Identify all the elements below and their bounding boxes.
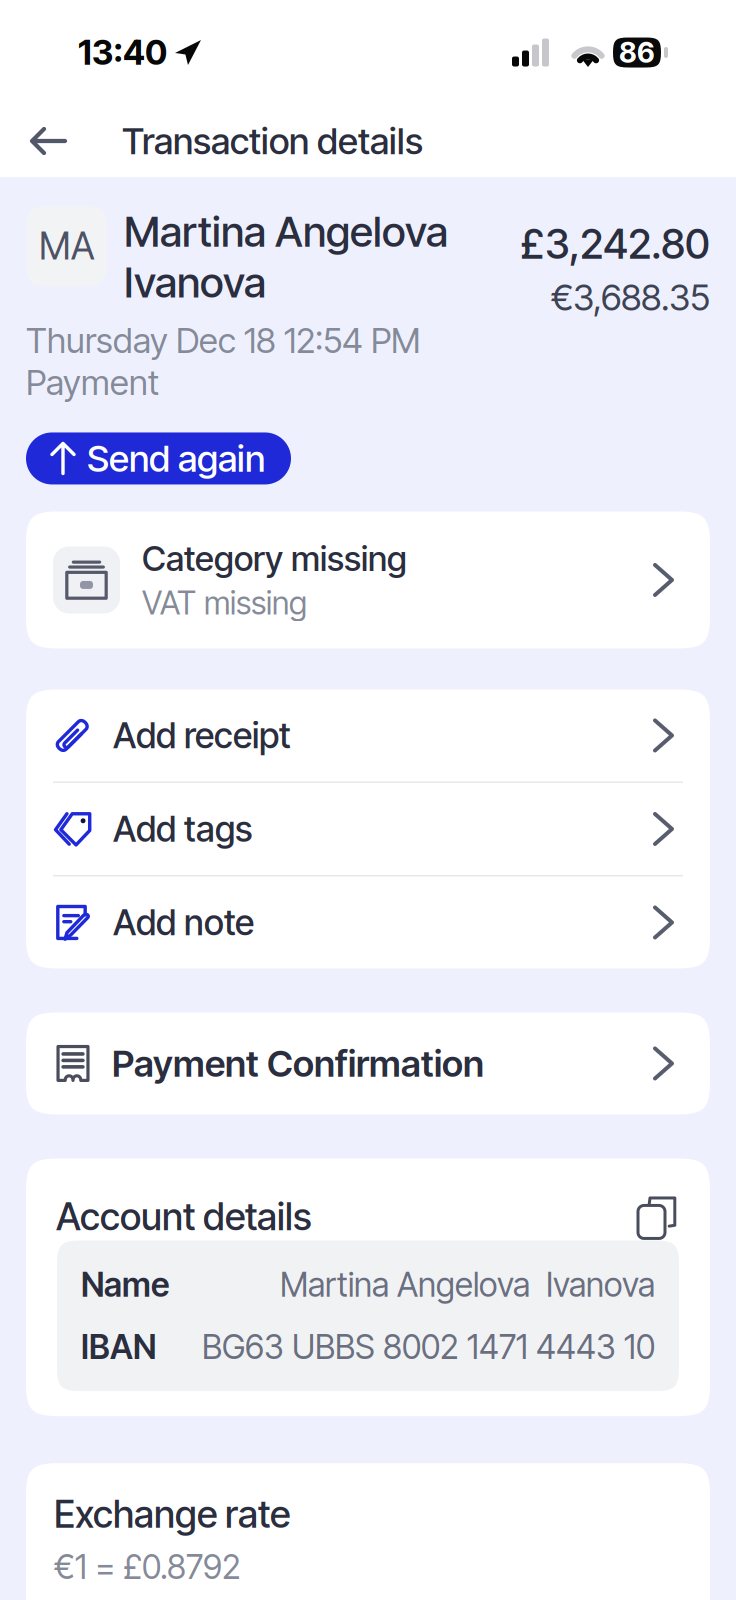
staticText: Add tags [113,808,252,850]
staticText: Martina Angelova Ivanova [280,1264,655,1305]
staticText: €1 = £0.8792 [54,1547,241,1587]
button[interactable]: Add note [26,876,710,968]
staticText: Category missing [142,538,407,579]
staticText: MA [39,223,94,269]
staticText: Account details [56,1194,312,1239]
staticText: £3,242.80 [520,219,710,269]
staticText: Exchange rate [54,1491,290,1537]
staticText: Payment [26,361,159,403]
staticText: IBAN [81,1327,156,1367]
staticText: BG63 UBBS 8002 1471 4443 10 [202,1327,655,1367]
staticText: €3,688.35 [551,276,710,319]
button[interactable]: Back [0,105,85,177]
staticText: Add note [113,901,254,944]
staticText: Martina Angelova Ivanova [124,206,448,308]
staticText: Add receipt [113,714,291,757]
staticText: Name [81,1264,169,1305]
button[interactable]: Add tags [26,783,710,875]
button[interactable]: Add receipt [26,689,710,781]
button[interactable]: Copy account details [636,1192,680,1240]
staticText: Thursday Dec 18 12:54 PM [26,319,420,361]
button[interactable]: Category missing [26,511,710,648]
staticText: Transaction details [122,119,423,163]
staticText: Send again [87,436,265,481]
button[interactable]: Send again [26,432,291,484]
staticText: Payment Confirmation [112,1041,484,1086]
staticText: 86 [619,36,655,69]
button[interactable]: Payment Confirmation [26,1012,710,1114]
staticText: 13:40 [78,32,167,73]
staticText: VAT missing [142,583,307,622]
